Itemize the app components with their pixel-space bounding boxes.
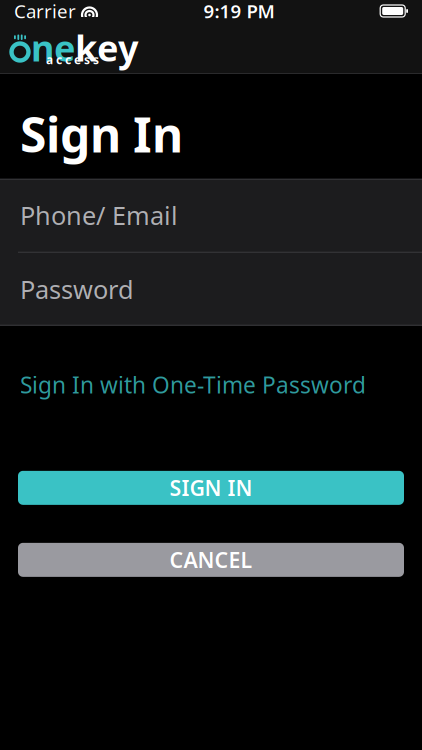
staticText: CANCEL — [169, 546, 252, 574]
staticText: Phone/ Email — [20, 198, 178, 232]
staticText: Carrier — [14, 0, 76, 23]
button[interactable]: SIGN IN — [18, 471, 404, 505]
staticText: Password — [20, 272, 134, 306]
staticText: Sign In — [20, 102, 183, 166]
staticText: key — [75, 24, 139, 71]
staticText: ne — [31, 24, 75, 71]
button[interactable]: CANCEL — [18, 543, 404, 577]
staticText: 9:19 PM — [204, 0, 275, 23]
button[interactable]: Sign In with One-Time Password — [20, 362, 366, 408]
staticText: a c c e s s — [46, 52, 99, 67]
staticText: SIGN IN — [169, 474, 252, 502]
staticText: Sign In with One-Time Password — [20, 370, 366, 400]
